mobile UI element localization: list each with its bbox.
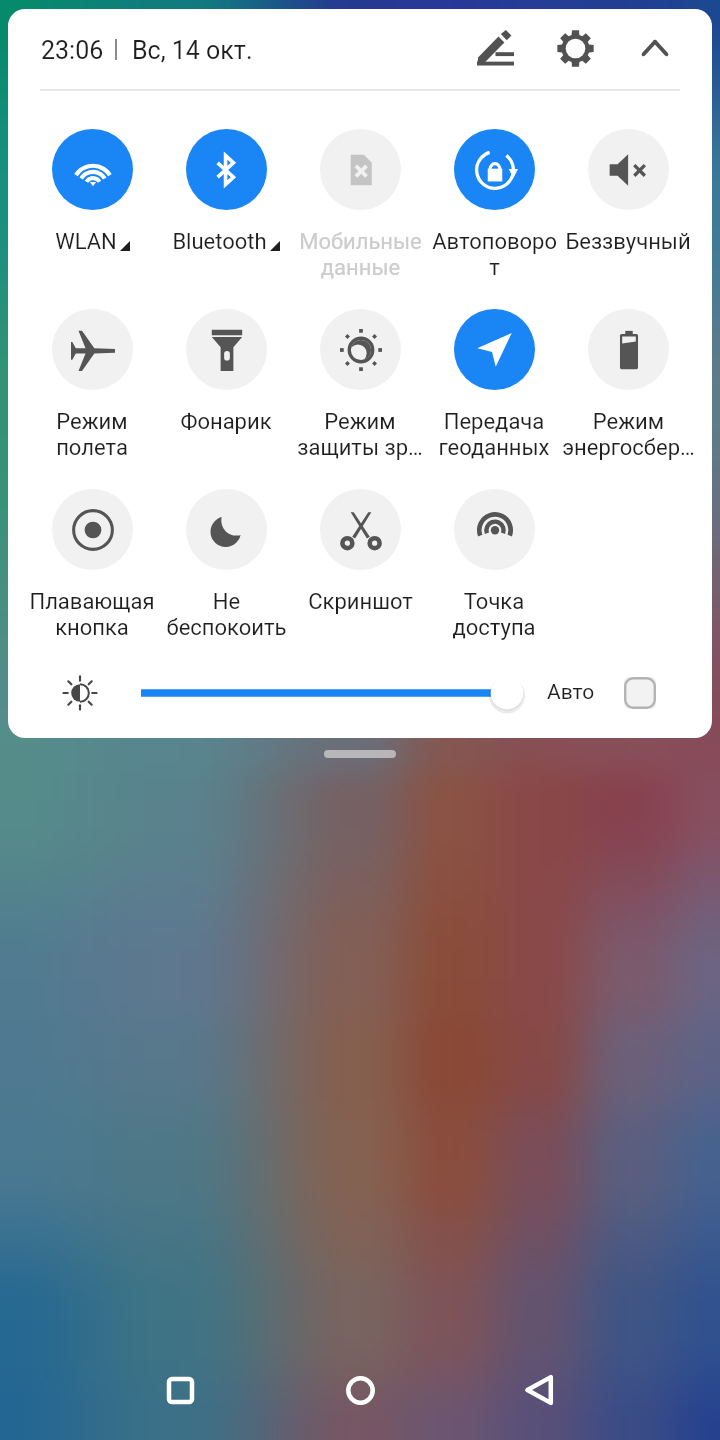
button[interactable]: Auto brightness [624, 677, 656, 709]
button[interactable] [427, 121, 561, 293]
staticText: WLAN [55, 229, 117, 255]
staticText: Скриншот [308, 589, 413, 615]
staticText: Не беспокоить [166, 589, 287, 640]
button[interactable] [25, 121, 159, 293]
staticText: Режим энергосбер… [562, 409, 695, 460]
button[interactable] [159, 121, 293, 293]
button[interactable]: Settings [543, 16, 607, 80]
button[interactable] [159, 301, 293, 473]
button[interactable]: Back [504, 1354, 576, 1426]
button[interactable]: Brightness [62, 675, 98, 711]
staticText: Точка доступа [452, 589, 536, 640]
button[interactable]: Collapse [623, 16, 687, 80]
staticText: Bluetooth [172, 229, 267, 255]
button[interactable] [293, 301, 427, 473]
button[interactable]: Home [324, 1354, 396, 1426]
button[interactable] [561, 121, 695, 293]
staticText: Режим полета [56, 409, 128, 460]
button[interactable] [293, 481, 427, 653]
staticText: 23:06 [41, 36, 104, 65]
staticText: Мобильные данные [299, 229, 422, 280]
button[interactable]: Brightness slider [133, 673, 533, 713]
button[interactable] [561, 301, 695, 473]
button[interactable] [427, 481, 561, 653]
staticText: Автоповорот [429, 229, 560, 280]
button[interactable] [293, 121, 427, 293]
staticText: Фонарик [180, 409, 272, 435]
staticText: Авто [547, 680, 595, 705]
staticText: Беззвучный [565, 229, 691, 255]
staticText: Плавающая кнопка [29, 589, 155, 640]
button[interactable]: Edit [463, 16, 527, 80]
button[interactable] [159, 481, 293, 653]
staticText: Вс, 14 окт. [132, 36, 253, 65]
staticText: Режим защиты зр… [297, 409, 423, 460]
button[interactable] [427, 301, 561, 473]
button[interactable] [25, 301, 159, 473]
staticText: Передача геоданных [438, 409, 550, 460]
button[interactable] [25, 481, 159, 653]
button[interactable]: Recents [144, 1354, 216, 1426]
